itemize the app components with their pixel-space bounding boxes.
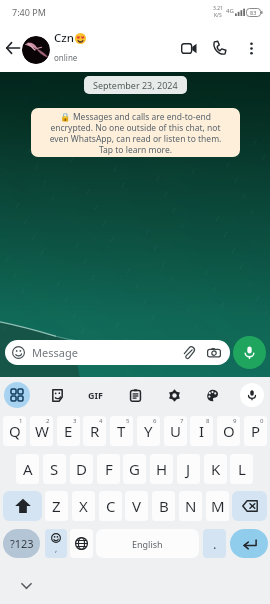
staticText: C — [106, 496, 116, 516]
staticText: L — [238, 459, 246, 479]
staticText: Q — [9, 421, 21, 441]
button[interactable]: I — [190, 416, 213, 446]
button[interactable]: T — [110, 416, 133, 446]
staticText: X — [79, 496, 88, 516]
staticText: 4G — [226, 7, 234, 15]
button[interactable]: O — [217, 416, 240, 446]
button[interactable]: N — [179, 491, 202, 521]
staticText: K — [211, 459, 221, 479]
staticText: H — [156, 459, 168, 479]
staticText: F — [105, 459, 113, 479]
staticText: V — [132, 496, 142, 516]
staticText: Message — [32, 345, 78, 360]
button[interactable]: Voice input — [240, 383, 264, 407]
button[interactable]: S — [43, 454, 66, 484]
staticText: English — [132, 538, 163, 550]
staticText: online — [54, 52, 78, 63]
staticText: Y — [144, 421, 153, 441]
staticText: 9 — [233, 417, 237, 425]
button[interactable]: U — [164, 416, 187, 446]
staticText: 5 — [126, 417, 130, 425]
button[interactable]: Z — [45, 491, 68, 521]
button[interactable]: Backspace — [232, 491, 267, 521]
staticText: Z — [52, 496, 61, 516]
button[interactable]: . — [203, 529, 226, 558]
button[interactable]: Back — [0, 34, 25, 62]
staticText: E — [64, 421, 73, 441]
button[interactable]: Enter — [230, 529, 268, 558]
staticText: K/S — [214, 12, 222, 19]
button[interactable]: Video call — [174, 33, 203, 63]
button[interactable]: Clipboard — [122, 382, 148, 408]
staticText: 6 — [153, 417, 157, 425]
staticText: W — [35, 421, 49, 441]
staticText: D — [76, 459, 87, 479]
staticText: 1 — [19, 417, 23, 425]
staticText: S — [50, 459, 59, 479]
button[interactable]: Czn — [54, 30, 174, 72]
button[interactable]: L — [230, 454, 253, 484]
button[interactable]: Settings — [161, 382, 187, 408]
staticText: 8 — [206, 417, 210, 425]
button[interactable]: X — [72, 491, 95, 521]
button[interactable]: Theme — [199, 382, 225, 408]
button[interactable]: Emoji — [45, 529, 67, 558]
button[interactable]: F — [97, 454, 120, 484]
button[interactable]: Call — [205, 33, 234, 63]
staticText: J — [186, 459, 191, 479]
button[interactable]: M — [206, 491, 229, 521]
button[interactable]: Apps — [4, 382, 30, 408]
button[interactable]: W — [30, 416, 53, 446]
button[interactable]: Change language — [70, 529, 93, 558]
button[interactable]: More options — [239, 33, 264, 63]
button[interactable]: Q — [3, 416, 26, 446]
button[interactable]: Profile photo — [22, 36, 50, 64]
button[interactable]: Voice message — [233, 336, 266, 369]
staticText: O — [223, 421, 235, 441]
button[interactable]: Stickers — [44, 382, 70, 408]
staticText: B — [159, 496, 169, 516]
button[interactable]: C — [99, 491, 122, 521]
button[interactable]: Shift — [3, 491, 42, 521]
button[interactable]: Attach — [178, 342, 199, 363]
button[interactable]: 🔒 Messages and calls are end-to-end encr… — [31, 108, 240, 157]
staticText: 2 — [46, 417, 50, 425]
staticText: P — [251, 421, 261, 441]
button[interactable]: English — [96, 529, 199, 558]
button[interactable]: P — [244, 416, 267, 446]
staticText: Czn — [54, 30, 74, 46]
button[interactable]: K — [204, 454, 227, 484]
button[interactable]: September 23, 2024 — [84, 76, 187, 94]
button[interactable]: Message — [5, 340, 230, 365]
staticText: 3 — [73, 417, 77, 425]
button[interactable]: V — [125, 491, 148, 521]
staticText: , — [55, 543, 58, 554]
staticText: U — [170, 421, 181, 441]
staticText: R — [90, 421, 100, 441]
button[interactable]: J — [177, 454, 200, 484]
staticText: 83 — [250, 9, 257, 16]
staticText: T — [117, 421, 126, 441]
button[interactable]: D — [70, 454, 93, 484]
button[interactable]: E — [57, 416, 80, 446]
staticText: I — [199, 421, 205, 441]
staticText: A — [23, 459, 33, 479]
staticText: 🔒 Messages and calls are end-to-end encr… — [43, 111, 228, 155]
staticText: 3.21 — [213, 5, 223, 12]
button[interactable]: A — [16, 454, 39, 484]
button[interactable]: Hide keyboard — [15, 575, 37, 597]
button[interactable]: H — [150, 454, 173, 484]
staticText: ?123 — [10, 536, 34, 551]
staticText: September 23, 2024 — [93, 79, 178, 91]
button[interactable]: G — [123, 454, 146, 484]
staticText: M — [211, 496, 225, 516]
button[interactable]: Camera — [203, 342, 224, 363]
staticText: GIF — [88, 389, 103, 401]
staticText: . — [213, 535, 217, 553]
button[interactable]: ?123 — [3, 529, 40, 558]
staticText: 7:40 PM — [12, 6, 46, 18]
button[interactable]: B — [152, 491, 175, 521]
button[interactable]: Y — [137, 416, 160, 446]
button[interactable]: GIF — [83, 382, 107, 408]
button[interactable]: R — [83, 416, 106, 446]
